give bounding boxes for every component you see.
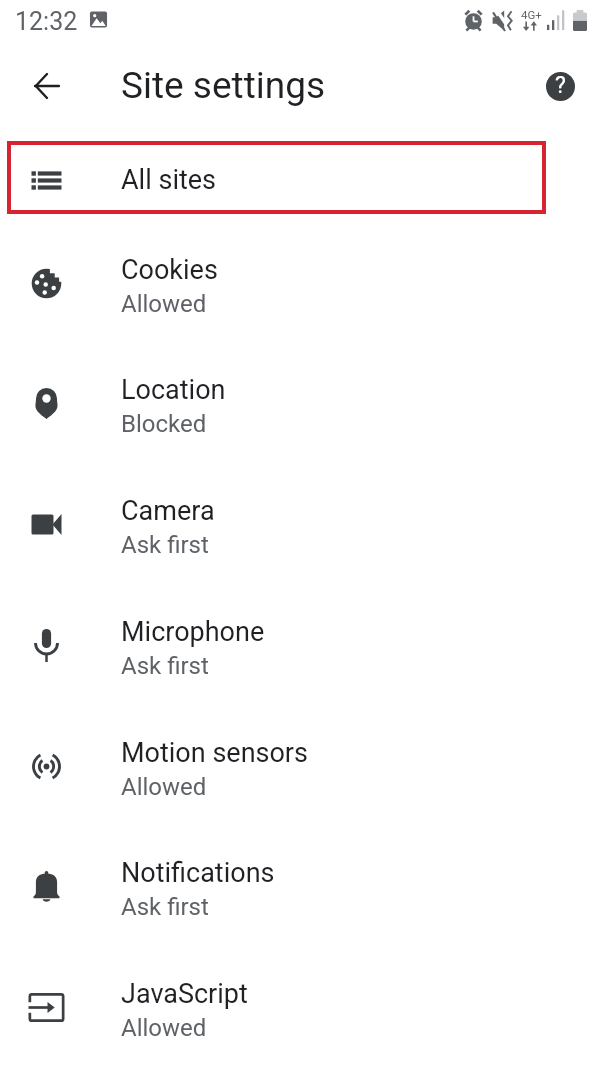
button[interactable]: Notifications bbox=[0, 826, 600, 947]
button[interactable]: JavaScript bbox=[0, 947, 600, 1066]
staticText: Notifications bbox=[121, 857, 275, 889]
staticText: Site settings bbox=[121, 64, 326, 107]
staticText: Ask first bbox=[121, 893, 209, 921]
button[interactable]: Cookies bbox=[0, 223, 600, 344]
staticText: ? bbox=[555, 72, 566, 99]
staticText: Microphone bbox=[121, 616, 265, 648]
button[interactable]: Motion sensors bbox=[0, 706, 600, 827]
staticText: Allowed bbox=[121, 773, 207, 801]
staticText: Location bbox=[121, 374, 226, 406]
button[interactable]: Help bbox=[534, 60, 586, 112]
button[interactable]: All sites bbox=[0, 143, 600, 217]
button[interactable]: Back bbox=[19, 58, 75, 114]
button[interactable]: Microphone bbox=[0, 585, 600, 706]
button[interactable]: Camera bbox=[0, 464, 600, 585]
staticText: Allowed bbox=[121, 1014, 207, 1042]
staticText: Camera bbox=[121, 495, 215, 527]
staticText: All sites bbox=[121, 164, 217, 196]
staticText: Cookies bbox=[121, 254, 218, 286]
staticText: JavaScript bbox=[121, 978, 248, 1010]
staticText: Ask first bbox=[121, 652, 209, 680]
staticText: 4G+ bbox=[521, 8, 542, 21]
staticText: 12:32 bbox=[15, 7, 78, 36]
staticText: Ask first bbox=[121, 531, 209, 559]
staticText: Motion sensors bbox=[121, 737, 308, 769]
staticText: Allowed bbox=[121, 290, 207, 318]
button[interactable]: Location bbox=[0, 343, 600, 464]
staticText: Blocked bbox=[121, 410, 207, 438]
